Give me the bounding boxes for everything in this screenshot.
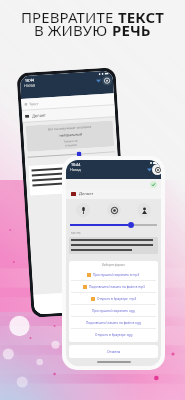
button[interactable]: Voice option 3: [137, 203, 151, 217]
staticText: как это: [71, 231, 81, 235]
button[interactable]: 10:44: [20, 70, 127, 315]
staticText: Вот так озвучивает заголовок: [48, 125, 92, 131]
button[interactable]: Отмена: [69, 345, 158, 358]
staticText: Текст: [29, 101, 39, 107]
staticText: 10:44: [71, 162, 81, 167]
button[interactable]: Account: [102, 75, 112, 86]
staticText: ПРЕВРАТИТЕ: [21, 7, 118, 27]
staticText: В ЖИВУЮ: [34, 20, 112, 40]
button[interactable]: Voice option 1: [76, 203, 90, 217]
staticText: Прослушать/сохранить в mp3: [93, 273, 140, 277]
staticText: Делает: [32, 113, 46, 118]
button[interactable]: Открыть в браузере ogg: [71, 329, 156, 340]
staticText: T: [65, 294, 72, 307]
staticText: РЕЧЬ: [112, 20, 151, 40]
button[interactable]: Прослушать/сохранить ogg: [71, 305, 156, 316]
button[interactable]: Подключить/скачать на файл в ogg: [71, 317, 156, 328]
button[interactable]: Voice option 2: [107, 203, 121, 217]
staticText: Назад: [24, 82, 35, 88]
staticText: слишком: [65, 143, 77, 147]
button[interactable]: Подключить/скачать на файл в mp3: [71, 281, 156, 292]
staticText: Подключить/скачать на файл в ogg: [86, 321, 141, 325]
staticText: Делает: [79, 191, 94, 197]
staticText: Подключить/скачать на файл в mp3: [89, 285, 145, 289]
staticText: Прослушать/сохранить ogg: [92, 309, 135, 313]
staticText: 10:44: [25, 77, 35, 83]
staticText: Открыть в браузере mp3: [97, 297, 137, 301]
staticText: Тоном и не: [64, 139, 78, 143]
staticText: Отмена: [107, 349, 121, 354]
staticText: Назад: [70, 167, 81, 172]
button[interactable]: 10:44: [66, 160, 161, 366]
button[interactable]: Profile: [152, 164, 161, 175]
staticText: нейтральный: [59, 131, 82, 138]
button[interactable]: Открыть в браузере mp3: [71, 293, 156, 304]
staticText: Открыть в браузере ogg: [95, 333, 133, 337]
button[interactable]: Прослушать/сохранить в mp3: [71, 269, 156, 280]
staticText: ТЕКСТ: [118, 7, 164, 27]
staticText: Выберите формат: [102, 263, 125, 267]
staticText: Озвучить: [63, 307, 74, 311]
